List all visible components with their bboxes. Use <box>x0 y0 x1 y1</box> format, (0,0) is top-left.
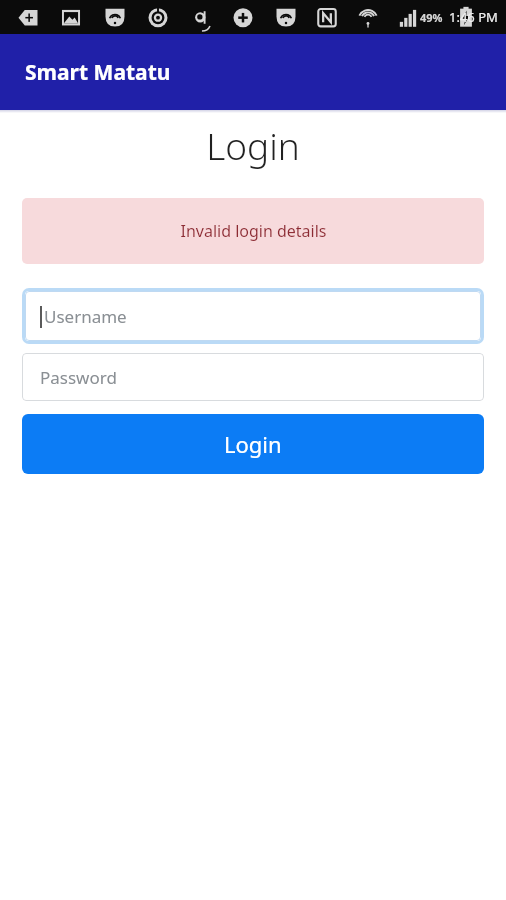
staticText: Smart Matatu <box>25 58 171 87</box>
button[interactable]: Password <box>22 353 484 401</box>
staticText: Invalid login details <box>180 220 327 242</box>
staticText: Login <box>224 429 282 459</box>
staticText: Password <box>40 366 117 389</box>
button[interactable]: Username <box>25 291 481 341</box>
button[interactable]: Invalid login details <box>22 198 484 264</box>
staticText: 1:46 PM <box>449 8 498 26</box>
staticText: Username <box>44 305 127 328</box>
staticText: Login <box>206 120 300 170</box>
button[interactable]: Login <box>22 414 484 474</box>
staticText: 49% <box>420 10 443 25</box>
